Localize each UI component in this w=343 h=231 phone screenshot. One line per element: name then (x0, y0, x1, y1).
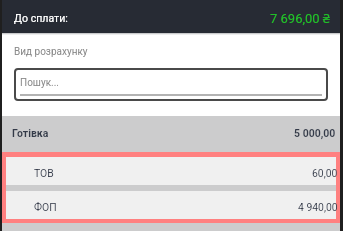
staticText: ФОП (34, 201, 57, 213)
button[interactable]: Пошук... (14, 68, 328, 101)
staticText: 7 696,00 ₴ (270, 9, 330, 27)
staticText: 4 940,00 (298, 201, 338, 213)
button[interactable]: ТОВ (6, 157, 336, 185)
staticText: ТОВ (34, 167, 54, 179)
staticText: Вид розрахунку (14, 46, 88, 58)
staticText: 60,00 (312, 167, 338, 179)
staticText: Готівка (12, 127, 49, 139)
button[interactable]: Готівка (2, 116, 340, 152)
button[interactable]: ФОП (6, 191, 336, 219)
staticText: Пошук... (20, 77, 59, 89)
staticText: 5 000,00 (294, 127, 336, 139)
staticText: До сплати: (14, 12, 68, 24)
